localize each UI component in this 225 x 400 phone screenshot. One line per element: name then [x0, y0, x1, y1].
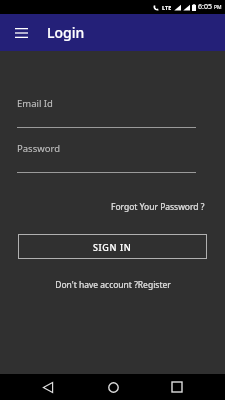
staticText: LTE [162, 4, 172, 11]
staticText: Password [17, 142, 60, 155]
staticText: SIGN IN [93, 241, 132, 253]
staticText: Email Id [17, 97, 53, 110]
button[interactable]: Don't have account ?Register [47, 276, 179, 294]
staticText: 6:05 [198, 2, 212, 12]
button[interactable]: Home [96, 374, 130, 400]
staticText: Login [47, 23, 85, 42]
button[interactable]: Back [31, 374, 65, 400]
staticText: Don't have account ?Register [55, 279, 171, 291]
button[interactable]: Recent apps [160, 374, 194, 400]
button[interactable]: Forgot Your Password ? [91, 198, 225, 216]
staticText: Forgot Your Password ? [111, 201, 205, 213]
button[interactable]: SIGN IN [18, 234, 207, 259]
staticText: PM [214, 4, 222, 11]
button[interactable]: Open navigation menu [11, 23, 31, 43]
